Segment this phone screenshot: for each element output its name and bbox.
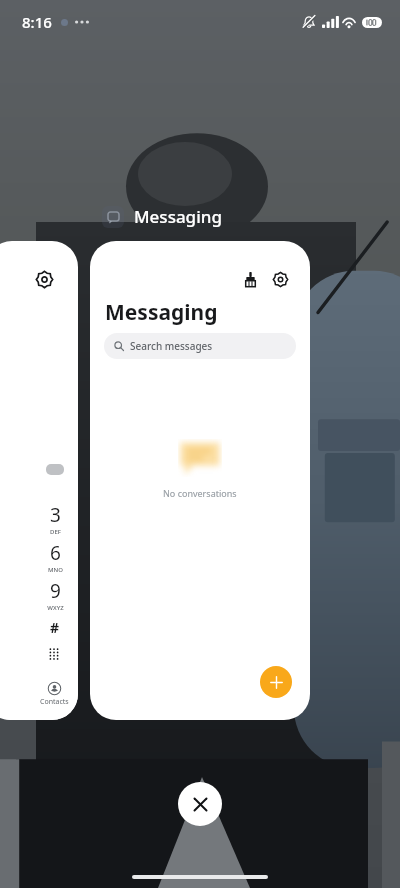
staticText: MNO <box>48 566 63 574</box>
button[interactable]: Search messages <box>104 333 296 359</box>
staticText: 9 <box>50 578 61 604</box>
button[interactable]: Settings <box>0 241 78 720</box>
button[interactable]: Messaging <box>102 205 228 228</box>
button[interactable]: Backspace <box>46 464 64 475</box>
button[interactable]: Settings <box>268 267 292 291</box>
staticText: 6 <box>50 540 61 566</box>
staticText: 8:16 <box>22 12 52 32</box>
staticText: Search messages <box>130 339 213 353</box>
button[interactable]: Clear all <box>178 782 222 826</box>
staticText: DEF <box>50 528 61 536</box>
other: Keypad <box>48 648 60 660</box>
staticText: No conversations <box>163 487 237 499</box>
button[interactable]: 9 <box>38 578 72 612</box>
button[interactable]: New conversation <box>260 666 292 698</box>
staticText: WXYZ <box>47 604 64 612</box>
button[interactable]: Contacts <box>40 682 69 707</box>
other: Settings <box>36 271 53 288</box>
staticText: Messaging <box>134 205 222 228</box>
button[interactable]: # <box>42 614 68 640</box>
staticText: # <box>50 618 60 637</box>
button[interactable]: Backspace <box>0 450 78 720</box>
button[interactable]: Clean up <box>238 267 262 291</box>
button[interactable]: 3 <box>38 502 72 536</box>
staticText: 3 <box>50 502 61 528</box>
staticText: Contacts <box>40 697 69 707</box>
staticText: Messaging <box>105 298 218 327</box>
button[interactable]: Clean up <box>90 241 310 720</box>
button[interactable]: 6 <box>38 540 72 574</box>
